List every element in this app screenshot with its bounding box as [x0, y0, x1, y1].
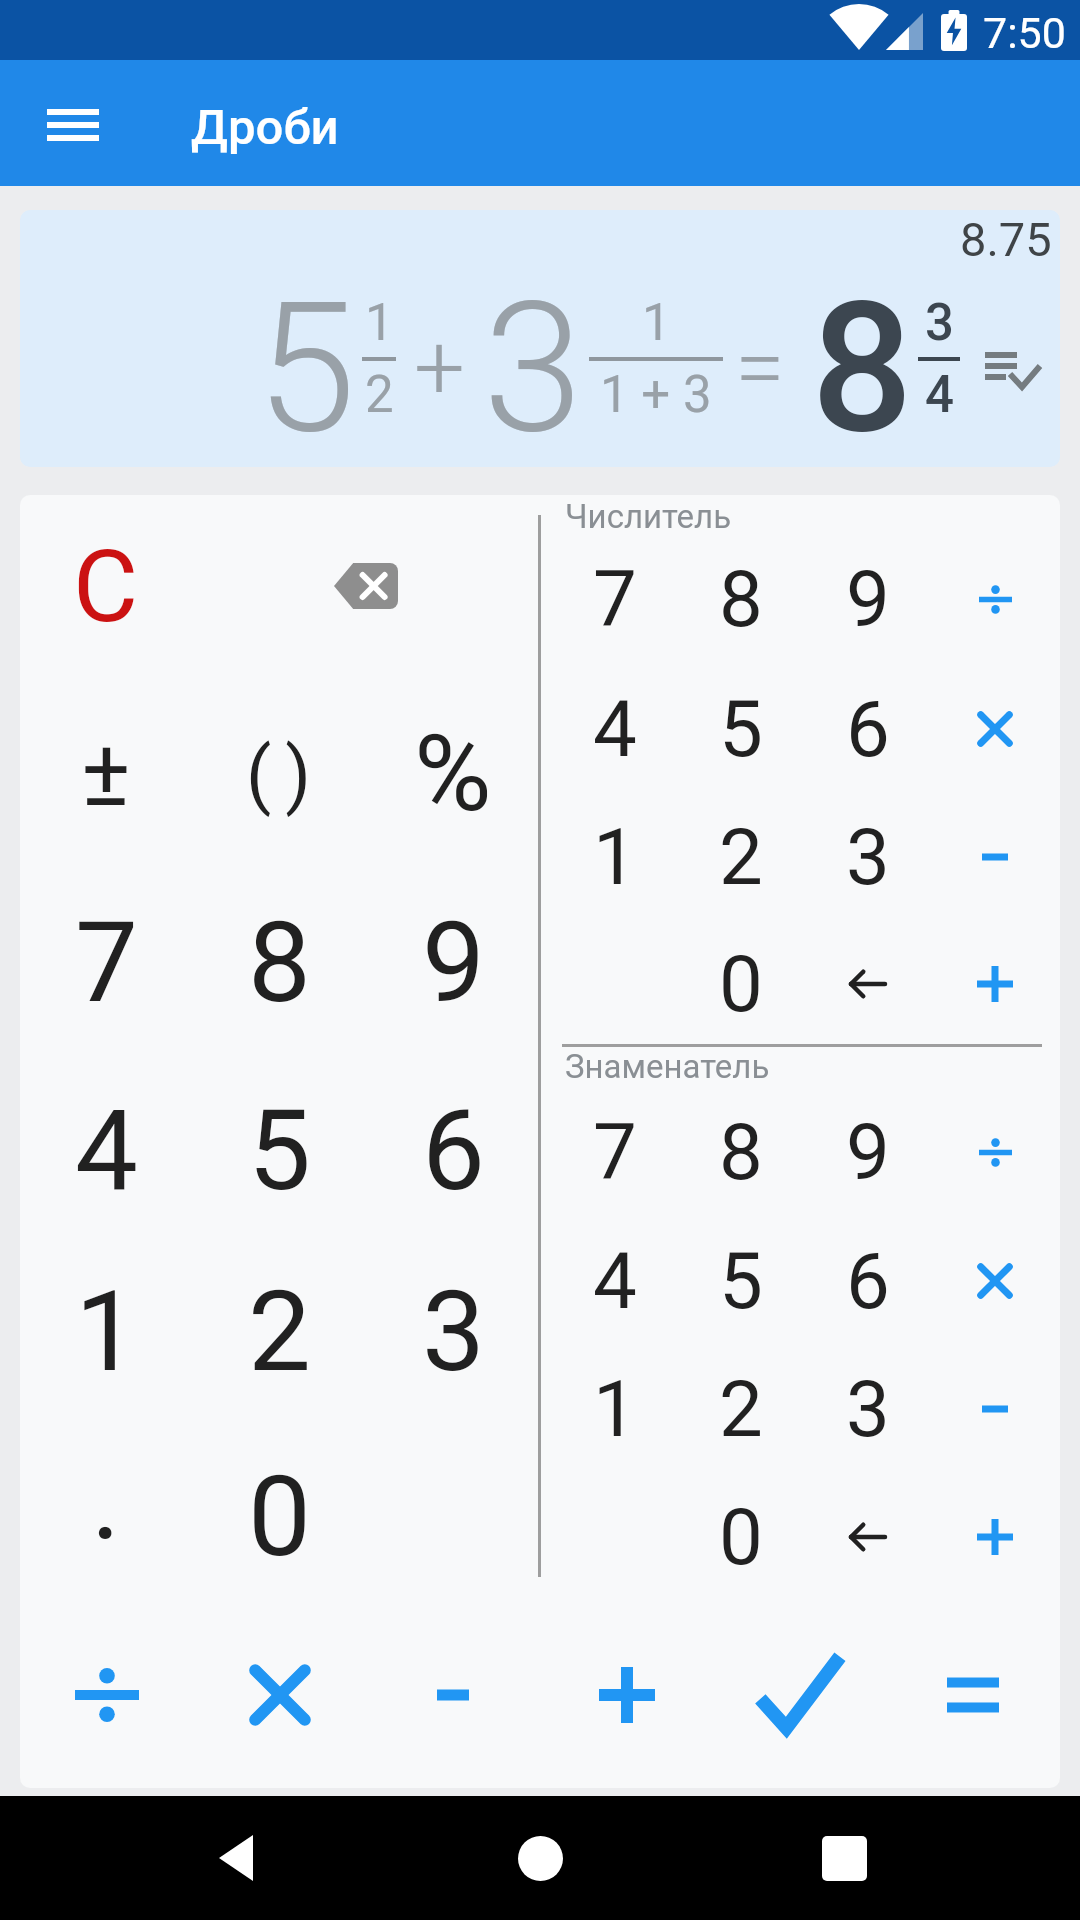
- button[interactable]: [176, 1798, 296, 1918]
- button[interactable]: 7: [26, 882, 186, 1042]
- staticText: 9: [422, 897, 485, 1028]
- staticText: 7: [75, 897, 138, 1028]
- staticText: 9: [846, 1107, 890, 1198]
- staticText: 8: [719, 554, 763, 645]
- button[interactable]: [200, 1615, 360, 1775]
- button[interactable]: 5: [661, 649, 821, 809]
- button[interactable]: [915, 519, 1060, 679]
- button[interactable]: 8: [199, 882, 359, 1042]
- button[interactable]: 8: [661, 519, 821, 679]
- button[interactable]: 0: [661, 1457, 821, 1617]
- button[interactable]: [33, 95, 113, 155]
- staticText: 5: [256, 263, 356, 467]
- button[interactable]: 0: [661, 904, 821, 1064]
- staticText: 4: [925, 365, 954, 425]
- button[interactable]: [893, 1615, 1053, 1775]
- button[interactable]: 5: [199, 1070, 359, 1230]
- staticText: 6: [422, 1085, 485, 1216]
- button[interactable]: 3: [788, 1329, 948, 1489]
- staticText: 2: [248, 1266, 311, 1397]
- staticText: 3: [483, 263, 583, 467]
- button[interactable]: 2: [199, 1251, 359, 1411]
- button[interactable]: 3: [788, 777, 948, 937]
- staticText: 8: [248, 897, 311, 1028]
- button[interactable]: 1: [535, 1329, 695, 1489]
- staticText: Знаменатель: [565, 1047, 770, 1086]
- staticText: 8: [811, 263, 914, 467]
- button[interactable]: 5: [661, 1201, 821, 1361]
- staticText: 1: [593, 812, 637, 903]
- staticText: Числитель: [565, 497, 732, 536]
- staticText: 8: [719, 1107, 763, 1198]
- button[interactable]: 6: [788, 1201, 948, 1361]
- button[interactable]: [915, 1201, 1060, 1361]
- staticText: +: [414, 316, 465, 421]
- button[interactable]: 7: [535, 519, 695, 679]
- staticText: 1: [365, 293, 394, 353]
- button[interactable]: 9: [788, 1072, 948, 1232]
- button[interactable]: 4: [535, 1201, 695, 1361]
- button[interactable]: 6: [788, 649, 948, 809]
- button[interactable]: [915, 1072, 1060, 1232]
- staticText: 5: [719, 684, 763, 775]
- staticText: 6: [846, 1236, 890, 1327]
- button[interactable]: [788, 1457, 948, 1617]
- button[interactable]: 0: [199, 1436, 359, 1596]
- staticText: 2: [365, 365, 394, 425]
- button[interactable]: [720, 1615, 880, 1775]
- staticText: 7: [593, 1107, 637, 1198]
- staticText: 1: [75, 1266, 138, 1397]
- staticText: 7: [593, 554, 637, 645]
- button[interactable]: [915, 777, 1060, 937]
- button[interactable]: 9: [788, 519, 948, 679]
- staticText: 5: [248, 1085, 311, 1216]
- staticText: ±: [81, 720, 131, 828]
- staticText: (): [246, 731, 326, 818]
- staticText: 1 + 3: [600, 365, 712, 425]
- staticText: .: [91, 1434, 121, 1565]
- staticText: 3: [846, 812, 890, 903]
- button[interactable]: [784, 1798, 904, 1918]
- button[interactable]: ±: [26, 694, 186, 854]
- button[interactable]: .: [26, 1419, 186, 1579]
- button[interactable]: 4: [26, 1070, 186, 1230]
- staticText: 4: [593, 684, 637, 775]
- button[interactable]: 4: [535, 649, 695, 809]
- button[interactable]: (): [206, 694, 366, 854]
- staticText: =: [735, 316, 785, 421]
- button[interactable]: [788, 904, 948, 1064]
- staticText: 5: [719, 1236, 763, 1327]
- button[interactable]: 6: [373, 1070, 533, 1230]
- staticText: 0: [719, 939, 763, 1030]
- button[interactable]: 2: [661, 1329, 821, 1489]
- staticText: Дроби: [191, 99, 339, 156]
- staticText: 3: [925, 293, 954, 353]
- staticText: 1: [593, 1364, 637, 1455]
- button[interactable]: 1: [535, 777, 695, 937]
- button[interactable]: 9: [373, 882, 533, 1042]
- button[interactable]: [915, 1457, 1060, 1617]
- button[interactable]: %: [373, 694, 533, 854]
- button[interactable]: 8: [661, 1072, 821, 1232]
- staticText: 1: [642, 293, 671, 353]
- button[interactable]: 3: [373, 1251, 533, 1411]
- staticText: 4: [75, 1085, 138, 1216]
- button[interactable]: [915, 1329, 1060, 1489]
- button[interactable]: C: [26, 506, 186, 666]
- staticText: 2: [719, 1364, 763, 1455]
- button[interactable]: [373, 1615, 533, 1775]
- staticText: 9: [846, 554, 890, 645]
- staticText: %: [414, 712, 492, 836]
- staticText: 0: [719, 1492, 763, 1583]
- button[interactable]: [286, 506, 446, 666]
- staticText: 0: [248, 1451, 311, 1582]
- staticText: 3: [846, 1364, 890, 1455]
- button[interactable]: 2: [661, 777, 821, 937]
- button[interactable]: 1: [26, 1251, 186, 1411]
- button[interactable]: [27, 1615, 187, 1775]
- button[interactable]: 7: [535, 1072, 695, 1232]
- button[interactable]: [915, 649, 1060, 809]
- button[interactable]: [480, 1798, 600, 1918]
- button[interactable]: [547, 1615, 707, 1775]
- button[interactable]: [915, 904, 1060, 1064]
